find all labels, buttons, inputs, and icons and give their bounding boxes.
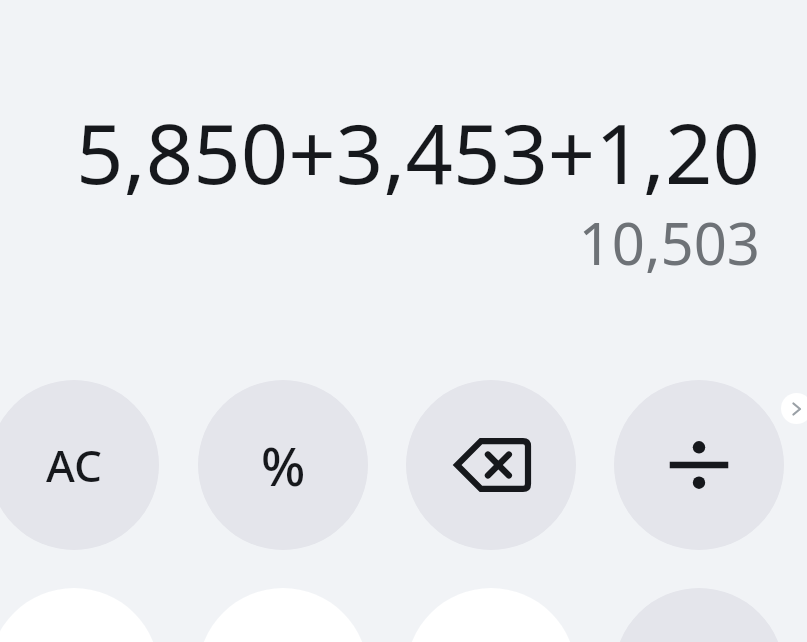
staticText: AC — [46, 435, 102, 495]
button[interactable]: More — [781, 393, 807, 424]
button[interactable]: % — [198, 380, 368, 550]
button[interactable] — [614, 588, 784, 642]
button[interactable] — [198, 588, 368, 642]
button[interactable] — [406, 588, 576, 642]
button[interactable]: AC — [0, 380, 159, 550]
staticText: 10,503 — [47, 203, 760, 275]
button[interactable] — [0, 588, 159, 642]
button[interactable]: Divide — [614, 380, 784, 550]
button[interactable]: Backspace — [406, 380, 576, 550]
staticText: % — [261, 430, 306, 501]
staticText: 5,850+3,453+1,200 — [47, 95, 760, 195]
